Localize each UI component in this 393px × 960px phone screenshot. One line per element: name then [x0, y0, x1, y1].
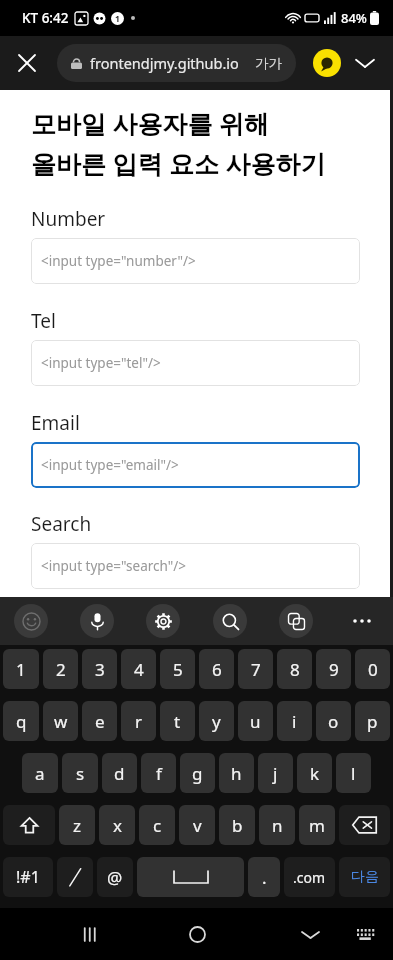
- button[interactable]: z: [59, 805, 95, 845]
- button[interactable]: Emoji: [14, 604, 48, 638]
- button[interactable]: Home: [176, 913, 218, 955]
- button[interactable]: Voice input: [80, 604, 114, 638]
- button[interactable]: Korean English toggle: [57, 857, 93, 897]
- button[interactable]: Search: [213, 604, 247, 638]
- staticText: 4: [134, 658, 144, 681]
- staticText: <input type="tel"/>: [41, 354, 161, 372]
- button[interactable]: More: [347, 45, 383, 81]
- button[interactable]: j: [258, 753, 293, 793]
- button[interactable]: frontendjmy.github.io: [57, 44, 296, 82]
- staticText: h: [231, 762, 242, 785]
- staticText: d: [114, 762, 125, 785]
- button[interactable]: Translate: [279, 604, 313, 638]
- button[interactable]: n: [259, 805, 295, 845]
- staticText: 3: [95, 658, 105, 681]
- staticText: 5: [173, 658, 183, 681]
- button[interactable]: 다음: [339, 857, 390, 897]
- button[interactable]: <input type="email"/>: [31, 442, 360, 488]
- staticText: s: [76, 762, 85, 785]
- staticText: 2: [56, 658, 66, 681]
- staticText: r: [135, 710, 143, 733]
- staticText: x: [113, 814, 122, 837]
- button[interactable]: 2: [43, 649, 78, 689]
- staticText: .: [262, 866, 267, 889]
- staticText: 1: [16, 658, 26, 681]
- button[interactable]: w: [43, 701, 78, 741]
- button[interactable]: <input type="number"/>: [31, 238, 360, 284]
- button[interactable]: t: [160, 701, 195, 741]
- button[interactable]: Close: [10, 46, 44, 80]
- button[interactable]: @: [97, 857, 133, 897]
- button[interactable]: 3: [82, 649, 117, 689]
- button[interactable]: 7: [238, 649, 273, 689]
- staticText: .com: [293, 868, 326, 887]
- button[interactable]: m: [299, 805, 335, 845]
- staticText: f: [156, 762, 162, 785]
- button[interactable]: r: [121, 701, 156, 741]
- button[interactable]: Space: [137, 857, 244, 897]
- button[interactable]: 1: [3, 649, 39, 689]
- button[interactable]: o: [316, 701, 351, 741]
- button[interactable]: More options: [345, 604, 379, 638]
- button[interactable]: !#1: [3, 857, 53, 897]
- button[interactable]: f: [141, 753, 176, 793]
- button[interactable]: s: [62, 753, 98, 793]
- button[interactable]: i: [277, 701, 312, 741]
- button[interactable]: 4: [121, 649, 156, 689]
- button[interactable]: Settings: [146, 604, 180, 638]
- button[interactable]: 6: [199, 649, 234, 689]
- staticText: c: [153, 814, 162, 837]
- button[interactable]: l: [336, 753, 371, 793]
- button[interactable]: e: [82, 701, 117, 741]
- button[interactable]: 9: [316, 649, 351, 689]
- staticText: z: [73, 814, 81, 837]
- staticText: 모바일 사용자를 위해: [31, 106, 270, 140]
- button[interactable]: Recent apps: [70, 913, 112, 955]
- button[interactable]: Hide keyboard: [289, 913, 331, 955]
- button[interactable]: y: [199, 701, 234, 741]
- button[interactable]: .: [248, 857, 280, 897]
- staticText: 7: [251, 658, 261, 681]
- button[interactable]: v: [179, 805, 215, 845]
- button[interactable]: x: [99, 805, 135, 845]
- button[interactable]: q: [3, 701, 39, 741]
- staticText: w: [54, 710, 68, 733]
- button[interactable]: 5: [160, 649, 195, 689]
- button[interactable]: Shift: [3, 805, 55, 845]
- staticText: e: [95, 710, 105, 733]
- staticText: 다음: [351, 868, 379, 886]
- button[interactable]: KakaoTalk: [308, 44, 346, 82]
- button[interactable]: u: [238, 701, 273, 741]
- staticText: 8: [290, 658, 300, 681]
- staticText: 1: [115, 13, 120, 25]
- button[interactable]: g: [180, 753, 215, 793]
- staticText: Number: [31, 206, 106, 232]
- staticText: 가가: [255, 55, 282, 72]
- staticText: j: [273, 762, 278, 785]
- button[interactable]: 0: [355, 649, 390, 689]
- staticText: @: [107, 866, 123, 889]
- staticText: a: [35, 762, 45, 785]
- button[interactable]: .com: [284, 857, 335, 897]
- button[interactable]: b: [219, 805, 255, 845]
- staticText: <input type="number"/>: [41, 252, 196, 270]
- staticText: i: [292, 710, 297, 733]
- button[interactable]: h: [219, 753, 254, 793]
- button[interactable]: p: [355, 701, 390, 741]
- button[interactable]: a: [22, 753, 58, 793]
- button[interactable]: <input type="tel"/>: [31, 340, 360, 386]
- staticText: 0: [368, 658, 378, 681]
- staticText: Tel: [31, 308, 56, 334]
- staticText: 올바른 입력 요소 사용하기: [31, 146, 326, 180]
- staticText: m: [309, 814, 325, 837]
- button[interactable]: d: [102, 753, 137, 793]
- staticText: p: [367, 710, 378, 733]
- staticText: 6: [212, 658, 222, 681]
- staticText: KT 6:42: [22, 9, 69, 27]
- button[interactable]: Change keyboard: [345, 914, 385, 954]
- button[interactable]: Backspace: [339, 805, 390, 845]
- button[interactable]: 8: [277, 649, 312, 689]
- button[interactable]: c: [139, 805, 175, 845]
- button[interactable]: k: [297, 753, 332, 793]
- button[interactable]: <input type="search"/>: [31, 543, 360, 589]
